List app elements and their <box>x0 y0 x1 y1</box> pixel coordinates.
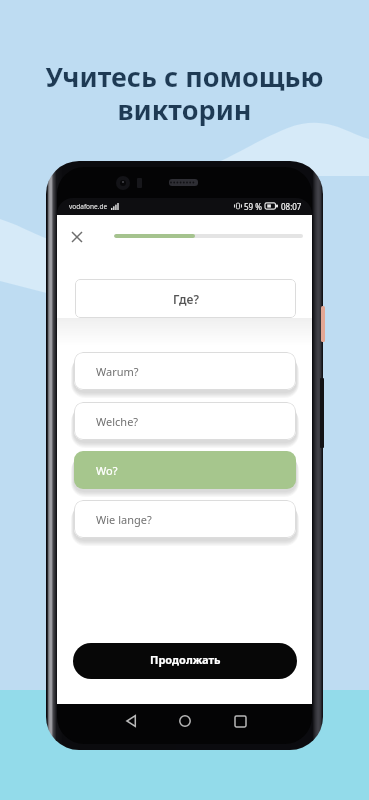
staticText: 08:07 <box>281 201 302 212</box>
button[interactable]: Продолжать <box>73 643 297 679</box>
staticText: Wie lange? <box>96 512 152 527</box>
staticText: Продолжать <box>150 652 221 667</box>
button[interactable]: Где? <box>75 279 296 318</box>
button[interactable]: Close <box>65 225 88 248</box>
button[interactable]: Welche? <box>74 402 296 440</box>
button[interactable]: Recents <box>227 708 253 734</box>
button[interactable]: Wie lange? <box>74 500 296 538</box>
staticText: Wo? <box>96 463 118 478</box>
button[interactable]: Wo? <box>74 451 296 489</box>
staticText: vodafone.de <box>69 202 108 211</box>
staticText: Где? <box>173 291 199 307</box>
button[interactable]: Back <box>118 708 144 734</box>
button[interactable]: Warum? <box>74 352 296 390</box>
staticText: Welche? <box>96 414 139 429</box>
staticText: Warum? <box>96 364 139 379</box>
staticText: Учитесь с помощью викторин <box>45 58 324 128</box>
staticText: 59 % <box>244 201 262 212</box>
button[interactable]: Home <box>172 708 198 734</box>
